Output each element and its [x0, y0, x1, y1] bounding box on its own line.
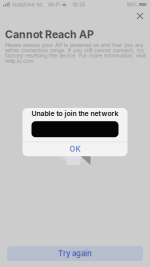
staticText: 96%	[126, 1, 137, 8]
staticText: help.io.com	[5, 57, 34, 64]
button[interactable]: Try again	[7, 246, 143, 261]
button[interactable]: OK	[22, 142, 127, 156]
staticText: Please ensure your AP is powered on and …	[5, 42, 143, 48]
staticText: Unable to join the network	[31, 109, 118, 118]
staticText: OK	[69, 145, 80, 154]
staticText: factory resetting the device. For more i…	[5, 52, 146, 59]
staticText: Vodafone NL Wi-Fi	[12, 1, 60, 8]
staticText: within connection range. If you still ca…	[5, 47, 144, 53]
staticText: Cannot Reach AP	[5, 28, 94, 41]
button[interactable]: Close	[133, 9, 147, 23]
staticText: Try again	[58, 249, 92, 258]
staticText: 18:55	[72, 1, 85, 8]
